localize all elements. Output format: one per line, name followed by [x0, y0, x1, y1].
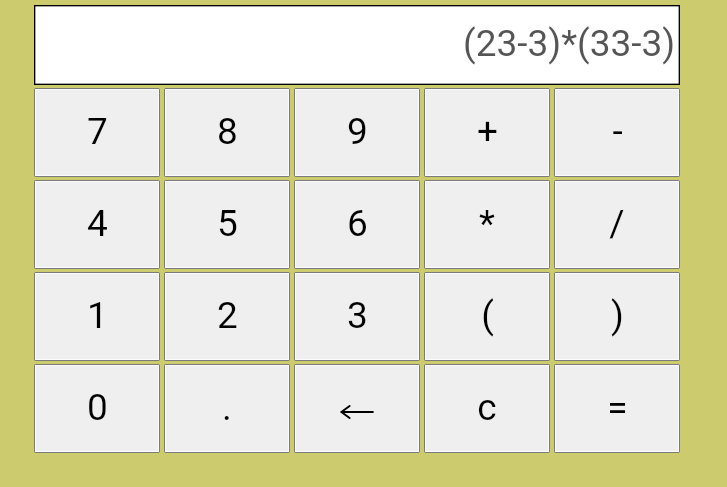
- button[interactable]: .: [166, 366, 288, 451]
- staticText: 9: [347, 110, 368, 153]
- button[interactable]: 6: [296, 182, 418, 267]
- staticText: /: [609, 202, 625, 245]
- button[interactable]: 8: [166, 90, 288, 175]
- staticText: 6: [347, 202, 368, 245]
- button[interactable]: (23-3)*(33-3): [34, 5, 680, 85]
- button[interactable]: 9: [296, 90, 418, 175]
- staticText: 8: [217, 110, 238, 153]
- button[interactable]: 1: [36, 274, 158, 359]
- button[interactable]: 3: [296, 274, 418, 359]
- button[interactable]: *: [426, 182, 548, 267]
- staticText: 3: [347, 294, 368, 337]
- staticText: 1: [87, 294, 108, 337]
- button[interactable]: 0: [36, 366, 158, 451]
- button[interactable]: Backspace: [296, 366, 418, 451]
- staticText: 7: [87, 110, 108, 153]
- staticText: 4: [87, 202, 108, 245]
- staticText: 2: [217, 294, 238, 337]
- button[interactable]: (: [426, 274, 548, 359]
- button[interactable]: 4: [36, 182, 158, 267]
- button[interactable]: c: [426, 366, 548, 451]
- button[interactable]: 5: [166, 182, 288, 267]
- button[interactable]: -: [556, 90, 678, 175]
- staticText: (23-3)*(33-3): [463, 22, 676, 65]
- button[interactable]: =: [556, 366, 678, 451]
- staticText: *: [479, 202, 495, 245]
- staticText: .: [222, 386, 232, 429]
- staticText: =: [607, 386, 628, 429]
- button[interactable]: ): [556, 274, 678, 359]
- staticText: -: [612, 110, 623, 153]
- staticText: 0: [87, 386, 108, 429]
- staticText: ): [611, 294, 624, 337]
- button[interactable]: 7: [36, 90, 158, 175]
- staticText: c: [477, 386, 497, 429]
- button[interactable]: 2: [166, 274, 288, 359]
- button[interactable]: /: [556, 182, 678, 267]
- staticText: +: [477, 110, 498, 153]
- staticText: 5: [217, 202, 238, 245]
- staticText: (: [481, 294, 494, 337]
- button[interactable]: +: [426, 90, 548, 175]
